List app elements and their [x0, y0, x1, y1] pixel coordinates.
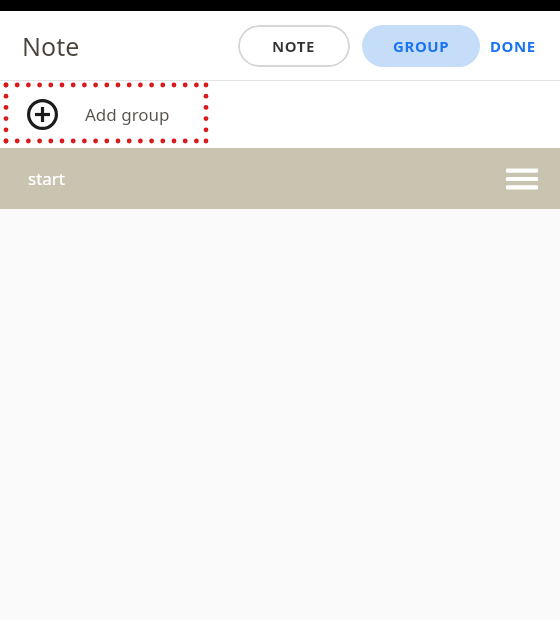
staticText: GROUP	[393, 36, 450, 56]
staticText: DONE	[490, 36, 536, 56]
staticText: NOTE	[272, 36, 316, 56]
other: Add group	[27, 99, 58, 130]
button[interactable]: start	[0, 148, 560, 209]
button[interactable]: DONE	[480, 25, 546, 67]
staticText: Add group	[85, 103, 170, 126]
staticText: start	[28, 167, 65, 190]
button[interactable]: Add group	[0, 81, 560, 148]
other: Reorder group	[506, 167, 538, 191]
button[interactable]: NOTE	[238, 25, 350, 67]
staticText: Note	[22, 29, 80, 63]
button[interactable]: GROUP	[362, 25, 480, 67]
